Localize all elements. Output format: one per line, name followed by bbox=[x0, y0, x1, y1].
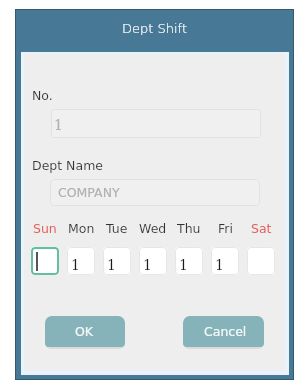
button[interactable]: Mon shift count bbox=[67, 247, 95, 275]
staticText: Cancel bbox=[204, 324, 247, 339]
staticText: Thu bbox=[177, 221, 201, 236]
button[interactable]: Thu shift count bbox=[175, 247, 203, 275]
button[interactable]: Sun shift count bbox=[31, 247, 59, 275]
staticText: OK bbox=[75, 324, 94, 339]
staticText: 1 bbox=[179, 257, 188, 273]
button[interactable]: Cancel bbox=[183, 316, 264, 347]
staticText: 1 bbox=[71, 257, 80, 273]
staticText: 1 bbox=[107, 257, 116, 273]
staticText: Dept Name bbox=[32, 158, 104, 173]
button[interactable]: COMPANY bbox=[50, 179, 260, 206]
staticText: Mon bbox=[68, 221, 95, 236]
staticText: 1 bbox=[143, 257, 152, 273]
staticText: Sun bbox=[33, 221, 57, 236]
staticText: Fri bbox=[218, 221, 233, 236]
staticText: 1 bbox=[54, 117, 63, 133]
button[interactable]: Sat shift count bbox=[247, 247, 275, 275]
staticText: COMPANY bbox=[58, 185, 120, 200]
staticText: Wed bbox=[139, 221, 167, 236]
button[interactable]: OK bbox=[45, 316, 125, 347]
button[interactable]: 1 bbox=[51, 109, 261, 138]
button[interactable]: Tue shift count bbox=[103, 247, 131, 275]
button[interactable]: Wed shift count bbox=[139, 247, 167, 275]
button[interactable]: Fri shift count bbox=[211, 247, 239, 275]
staticText: Sat bbox=[251, 221, 272, 236]
staticText: Tue bbox=[106, 221, 128, 236]
staticText: 1 bbox=[215, 257, 224, 273]
staticText: Dept Shift bbox=[122, 21, 188, 36]
staticText: No. bbox=[32, 88, 53, 103]
